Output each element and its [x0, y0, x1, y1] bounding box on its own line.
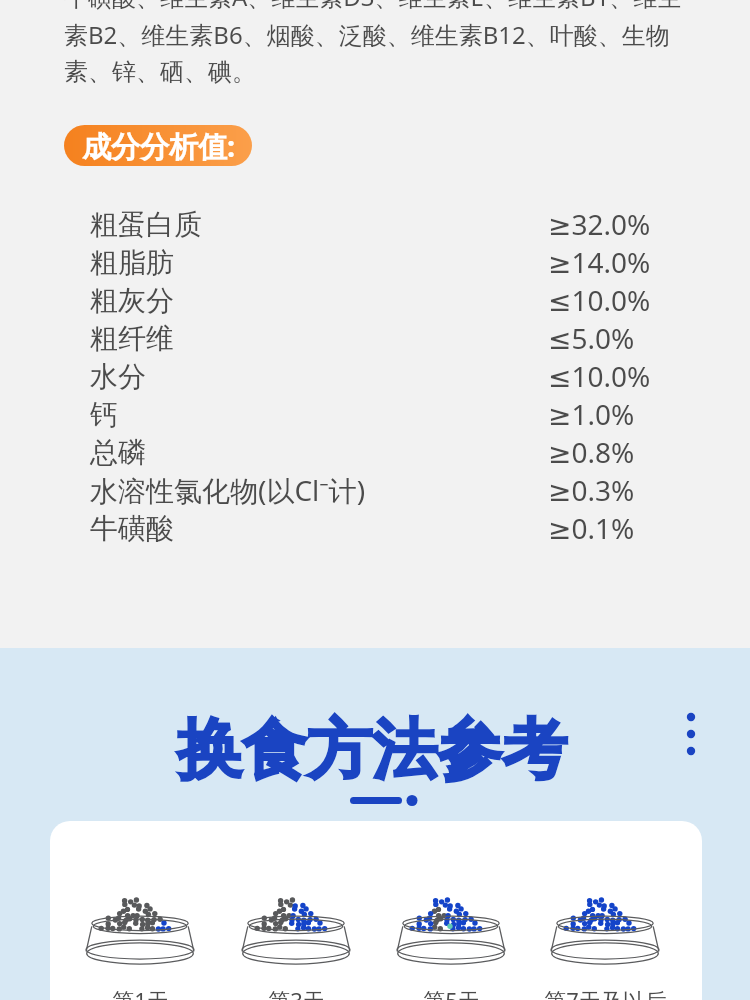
staticText: 成分分析值: — [82, 126, 236, 166]
staticText: ≤10.0% — [548, 357, 651, 395]
staticText: 水溶性氯化物(以Cl⁻计) — [90, 471, 366, 509]
staticText: 牛磺酸 — [90, 511, 174, 546]
button[interactable]: 第3天 — [216, 873, 376, 1000]
staticText: 总磷 — [90, 435, 146, 470]
staticText: ≥1.0% — [548, 395, 635, 433]
staticText: ≥0.3% — [548, 471, 635, 509]
staticText: 第1天 — [112, 985, 169, 1000]
staticText: 粗纤维 — [90, 321, 174, 356]
staticText: 粗脂肪 — [90, 245, 174, 280]
staticText: 换食方法参考 — [177, 709, 567, 791]
button[interactable]: More options — [667, 693, 715, 741]
staticText: 粗蛋白质 — [90, 207, 202, 242]
staticText: 第3天 — [268, 985, 325, 1000]
staticText: 水分 — [90, 359, 146, 394]
button[interactable]: 第1天 — [60, 873, 220, 1000]
staticText: 素B2、维生素B6、烟酸、泛酸、维生素B12、叶酸、生物 — [64, 18, 670, 51]
staticText: ≤5.0% — [548, 319, 635, 357]
staticText: 粗灰分 — [90, 283, 174, 318]
staticText: ≥0.1% — [548, 509, 635, 547]
button[interactable]: 成分分析值: — [64, 125, 252, 166]
staticText: 素、锌、硒、碘。 — [64, 57, 256, 87]
staticText: 钙 — [90, 397, 118, 432]
button[interactable]: 第1天 — [50, 821, 702, 1000]
staticText: ≤10.0% — [548, 281, 651, 319]
staticText: 第7天及以后 — [544, 985, 667, 1000]
staticText: 第5天 — [423, 985, 480, 1000]
button[interactable]: 第5天 — [371, 873, 531, 1000]
staticText: 牛磺酸、维生素A、维生素D3、维生素E、维生素B1、维生 — [64, 0, 682, 13]
button[interactable]: 第7天及以后 — [525, 873, 685, 1000]
staticText: ≥0.8% — [548, 433, 635, 471]
staticText: ≥14.0% — [548, 243, 651, 281]
staticText: ≥32.0% — [548, 205, 651, 243]
